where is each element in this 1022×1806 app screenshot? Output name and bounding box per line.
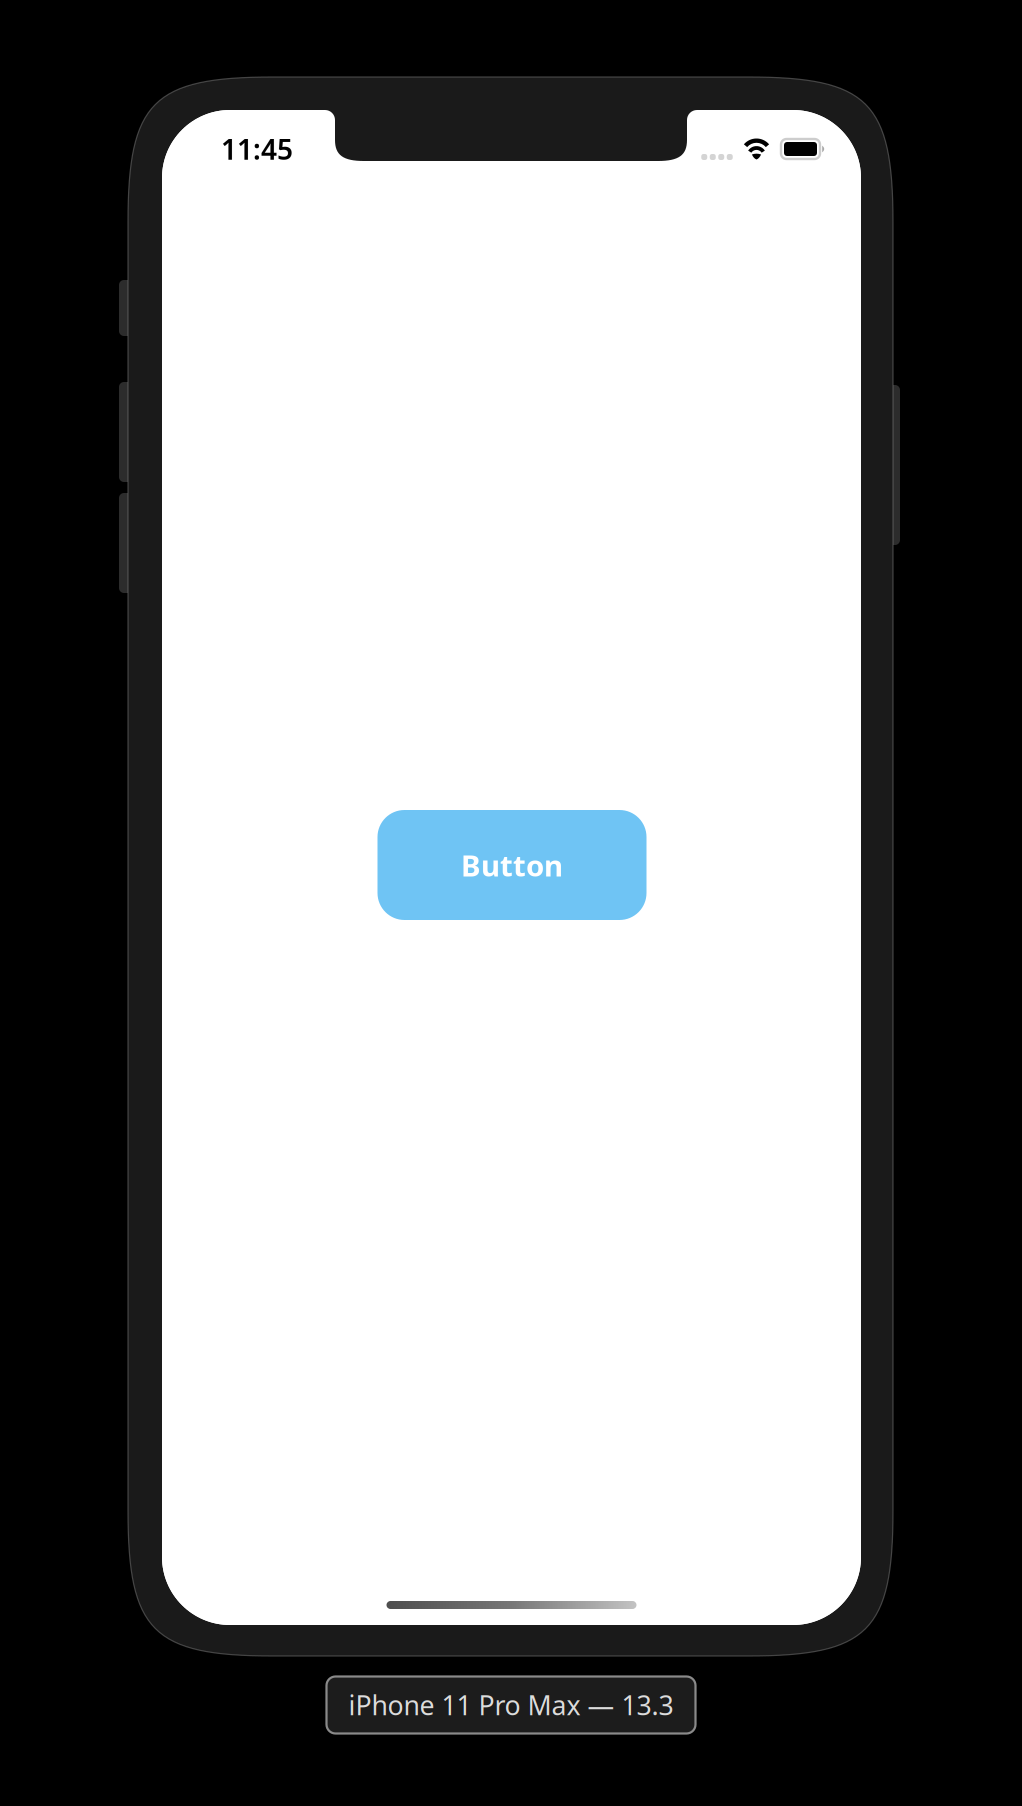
button[interactable]: Volume Down bbox=[119, 493, 147, 593]
staticText: 11:45 bbox=[221, 130, 293, 168]
button[interactable]: Side button bbox=[872, 385, 900, 545]
button[interactable]: iPhone 11 Pro Max — 13.3 bbox=[326, 1676, 695, 1733]
staticText: Button bbox=[461, 845, 563, 884]
button[interactable]: Volume Up bbox=[119, 382, 147, 482]
button[interactable]: Ring/Silent switch bbox=[119, 280, 147, 336]
staticText: iPhone 11 Pro Max — 13.3 bbox=[348, 1687, 673, 1723]
button[interactable]: Button bbox=[377, 810, 646, 920]
